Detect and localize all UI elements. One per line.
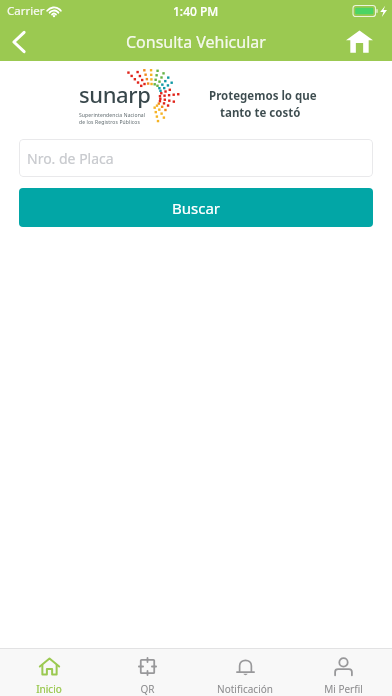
staticText: 1:40 PM <box>173 3 219 19</box>
staticText: Notificación <box>217 682 273 696</box>
staticText: Inicio <box>36 682 62 696</box>
staticText: Mi Perfil <box>324 682 363 696</box>
button[interactable]: Nro. de Placa <box>19 139 373 177</box>
staticText: Protegemos lo que <box>209 88 317 104</box>
button[interactable]: Buscar <box>19 188 373 227</box>
staticText: Consulta Vehicular <box>126 31 266 53</box>
staticText: sunarp <box>79 79 151 109</box>
button[interactable]: QR <box>98 649 196 696</box>
button[interactable]: Home <box>346 22 392 61</box>
staticText: Nro. de Placa <box>27 149 114 168</box>
button[interactable]: Mi Perfil <box>294 649 392 696</box>
staticText: Buscar <box>172 198 221 218</box>
staticText: tanto te costó <box>220 105 301 121</box>
button[interactable]: Notificación <box>196 649 294 696</box>
staticText: QR <box>140 682 155 696</box>
staticText: Superintendencia Nacional <box>79 112 146 119</box>
staticText: Carrier <box>7 3 45 19</box>
staticText: de los Registros Públicos <box>79 119 140 126</box>
button[interactable]: Back <box>0 22 38 61</box>
button[interactable]: Inicio <box>0 649 98 696</box>
